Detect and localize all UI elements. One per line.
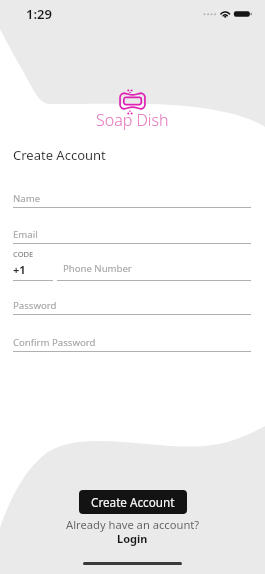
staticText: Create Account bbox=[91, 494, 175, 510]
staticText: 1:29 bbox=[26, 5, 52, 23]
staticText: Already have an account? bbox=[66, 517, 200, 532]
staticText: Phone Number bbox=[63, 262, 132, 275]
button[interactable]: Login bbox=[117, 531, 148, 546]
staticText: Password bbox=[13, 299, 57, 312]
staticText: Confirm Password bbox=[13, 336, 96, 349]
staticText: CODE bbox=[13, 249, 34, 259]
staticText: Create Account bbox=[13, 146, 106, 164]
staticText: Soap Dish bbox=[96, 109, 169, 131]
staticText: Email bbox=[13, 228, 38, 241]
staticText: Login bbox=[117, 531, 148, 546]
staticText: +1 bbox=[13, 262, 26, 277]
staticText: Name bbox=[13, 192, 41, 205]
button[interactable]: Create Account bbox=[79, 490, 187, 514]
